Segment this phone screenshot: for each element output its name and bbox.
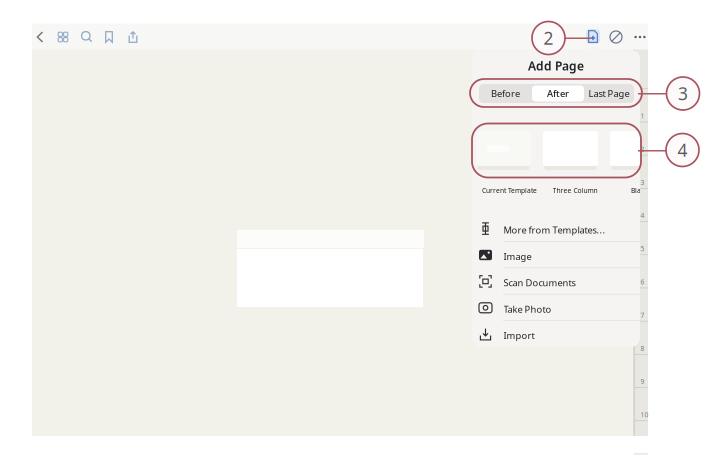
button[interactable]: Before — [479, 84, 532, 103]
button[interactable]: Image — [472, 242, 640, 268]
staticText: Scan Documents — [503, 276, 575, 289]
button[interactable]: Bookmark — [98, 23, 120, 50]
staticText: 8 — [640, 344, 644, 353]
button[interactable]: After — [532, 85, 584, 101]
staticText: Three Column — [552, 186, 597, 195]
staticText: 5 — [640, 244, 644, 253]
button[interactable]: More options — [630, 23, 650, 50]
staticText: Take Photo — [503, 303, 551, 315]
staticText: Image — [503, 250, 531, 262]
button[interactable]: Import — [472, 321, 640, 347]
staticText: 2 — [640, 145, 644, 154]
staticText: More from Templates... — [503, 224, 605, 236]
button[interactable]: Share — [122, 23, 144, 50]
button[interactable]: Markup — [606, 23, 626, 50]
staticText: Before — [491, 87, 520, 100]
staticText: 10 — [640, 410, 648, 419]
staticText: 4 — [677, 138, 687, 161]
button[interactable] — [476, 131, 532, 170]
staticText: Import — [503, 329, 534, 342]
button[interactable]: Add Page — [586, 29, 600, 44]
staticText: Add Page — [528, 58, 584, 74]
staticText: 9 — [640, 377, 644, 386]
staticText: Last Page — [588, 87, 629, 100]
button[interactable]: Scan Documents — [472, 268, 640, 295]
staticText: 1 — [640, 111, 644, 120]
staticText: Blank — [631, 186, 649, 195]
staticText: 3 — [678, 82, 688, 105]
staticText: 3 — [640, 178, 644, 187]
staticText: After — [547, 87, 569, 100]
button[interactable]: Search — [76, 23, 98, 50]
button[interactable]: More from Templates... — [472, 215, 640, 242]
staticText: 6 — [640, 277, 644, 286]
staticText: 4 — [640, 211, 644, 220]
staticText: 7 — [640, 311, 644, 320]
button[interactable] — [610, 131, 666, 170]
button[interactable]: Last Page — [584, 84, 634, 103]
staticText: Current Template — [482, 186, 537, 195]
staticText: 2 — [543, 26, 553, 49]
button[interactable] — [543, 131, 599, 170]
button[interactable]: Back — [29, 23, 51, 50]
button[interactable]: Pages — [52, 23, 74, 50]
button[interactable]: Take Photo — [472, 295, 640, 321]
